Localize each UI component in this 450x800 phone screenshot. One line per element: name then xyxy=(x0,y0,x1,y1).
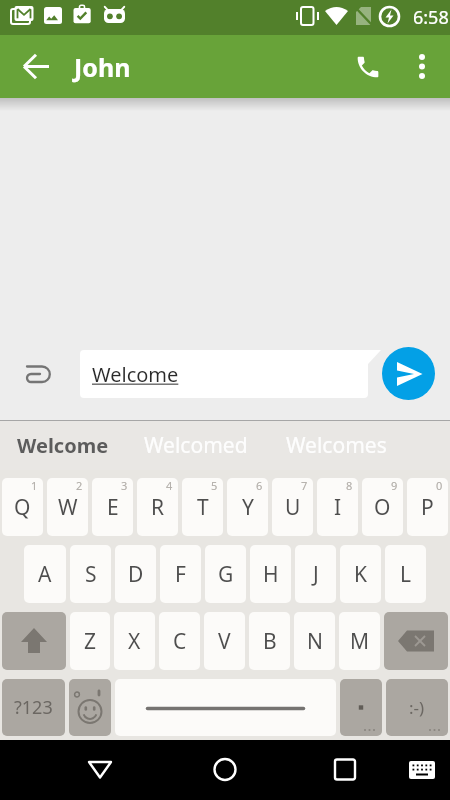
button[interactable]: W xyxy=(47,478,88,536)
button[interactable] xyxy=(384,612,448,670)
staticText: A xyxy=(38,560,52,589)
button[interactable] xyxy=(70,740,130,800)
button[interactable]: M xyxy=(339,612,380,670)
button[interactable]: D xyxy=(115,545,156,603)
staticText: E xyxy=(107,493,119,522)
button[interactable] xyxy=(340,679,382,736)
staticText: 7 xyxy=(301,478,308,493)
staticText: B xyxy=(263,627,277,656)
staticText: 4 xyxy=(166,478,173,493)
staticText: Welcomed xyxy=(144,431,248,460)
button[interactable] xyxy=(0,35,56,98)
button[interactable]: G xyxy=(205,545,246,603)
button[interactable]: :-) xyxy=(386,679,448,736)
staticText: ?123 xyxy=(14,695,53,720)
staticText: F xyxy=(175,560,186,589)
staticText: 1 xyxy=(31,478,38,493)
staticText: X xyxy=(128,627,141,656)
button[interactable]: N xyxy=(294,612,335,670)
staticText: S xyxy=(85,560,97,589)
button[interactable]: R xyxy=(137,478,178,536)
button[interactable]: ?123 xyxy=(2,679,65,736)
staticText: R xyxy=(151,493,165,522)
button[interactable] xyxy=(195,740,255,800)
button[interactable]: I xyxy=(317,478,358,536)
button[interactable]: Welcome xyxy=(80,350,381,398)
button[interactable]: Welcomed xyxy=(132,421,260,470)
button[interactable]: T xyxy=(182,478,223,536)
staticText: Y xyxy=(242,493,254,522)
staticText: M xyxy=(350,627,370,656)
button[interactable]: Welcomes xyxy=(272,421,400,470)
button[interactable]: Z xyxy=(70,612,110,670)
button[interactable] xyxy=(2,612,66,670)
button[interactable]: O xyxy=(362,478,403,536)
staticText: H xyxy=(263,560,279,589)
staticText: I xyxy=(334,493,342,522)
button[interactable] xyxy=(344,43,392,91)
button[interactable]: K xyxy=(340,545,381,603)
staticText: O xyxy=(374,493,391,522)
staticText: G xyxy=(218,560,234,589)
button[interactable]: H xyxy=(250,545,291,603)
button[interactable]: Y xyxy=(227,478,268,536)
button[interactable]: B xyxy=(249,612,290,670)
button[interactable]: J xyxy=(295,545,336,603)
button[interactable] xyxy=(0,350,70,420)
staticText: 2 xyxy=(76,478,83,493)
staticText: V xyxy=(218,627,231,656)
button[interactable]: F xyxy=(160,545,201,603)
button[interactable]: V xyxy=(204,612,245,670)
staticText: C xyxy=(173,627,187,656)
staticText: 6 xyxy=(256,478,263,493)
staticText: 5 xyxy=(211,478,218,493)
button[interactable]: U xyxy=(272,478,313,536)
button[interactable] xyxy=(315,740,375,800)
staticText: Welcome xyxy=(17,432,109,459)
staticText: P xyxy=(421,493,434,522)
button[interactable]: A xyxy=(24,545,66,603)
staticText: 6:58 xyxy=(413,5,449,30)
staticText: U xyxy=(285,493,301,522)
button[interactable]: C xyxy=(159,612,200,670)
staticText: 3 xyxy=(121,478,128,493)
button[interactable]: Welcome xyxy=(8,421,118,470)
button[interactable]: E xyxy=(92,478,133,536)
staticText: 0 xyxy=(436,478,443,493)
staticText: K xyxy=(354,560,367,589)
staticText: Q xyxy=(14,493,31,522)
staticText: T xyxy=(197,493,209,522)
staticText: J xyxy=(313,560,319,589)
staticText: Welcomes xyxy=(286,431,387,460)
staticText: John xyxy=(74,50,131,84)
button[interactable] xyxy=(382,347,435,400)
button[interactable] xyxy=(398,740,446,800)
staticText: :-) xyxy=(409,696,425,719)
button[interactable]: P xyxy=(407,478,448,536)
button[interactable]: X xyxy=(114,612,155,670)
staticText: W xyxy=(58,493,78,522)
staticText: Z xyxy=(84,627,97,656)
button[interactable] xyxy=(115,679,336,736)
button[interactable]: S xyxy=(70,545,111,603)
button[interactable] xyxy=(69,679,111,736)
staticText: 9 xyxy=(391,478,398,493)
button[interactable]: L xyxy=(385,545,426,603)
button[interactable] xyxy=(406,35,450,98)
staticText: Welcome xyxy=(92,361,179,388)
staticText: D xyxy=(128,560,144,589)
staticText: 8 xyxy=(346,478,353,493)
button[interactable]: Q xyxy=(2,478,43,536)
staticText: L xyxy=(400,560,412,589)
staticText: N xyxy=(307,627,323,656)
